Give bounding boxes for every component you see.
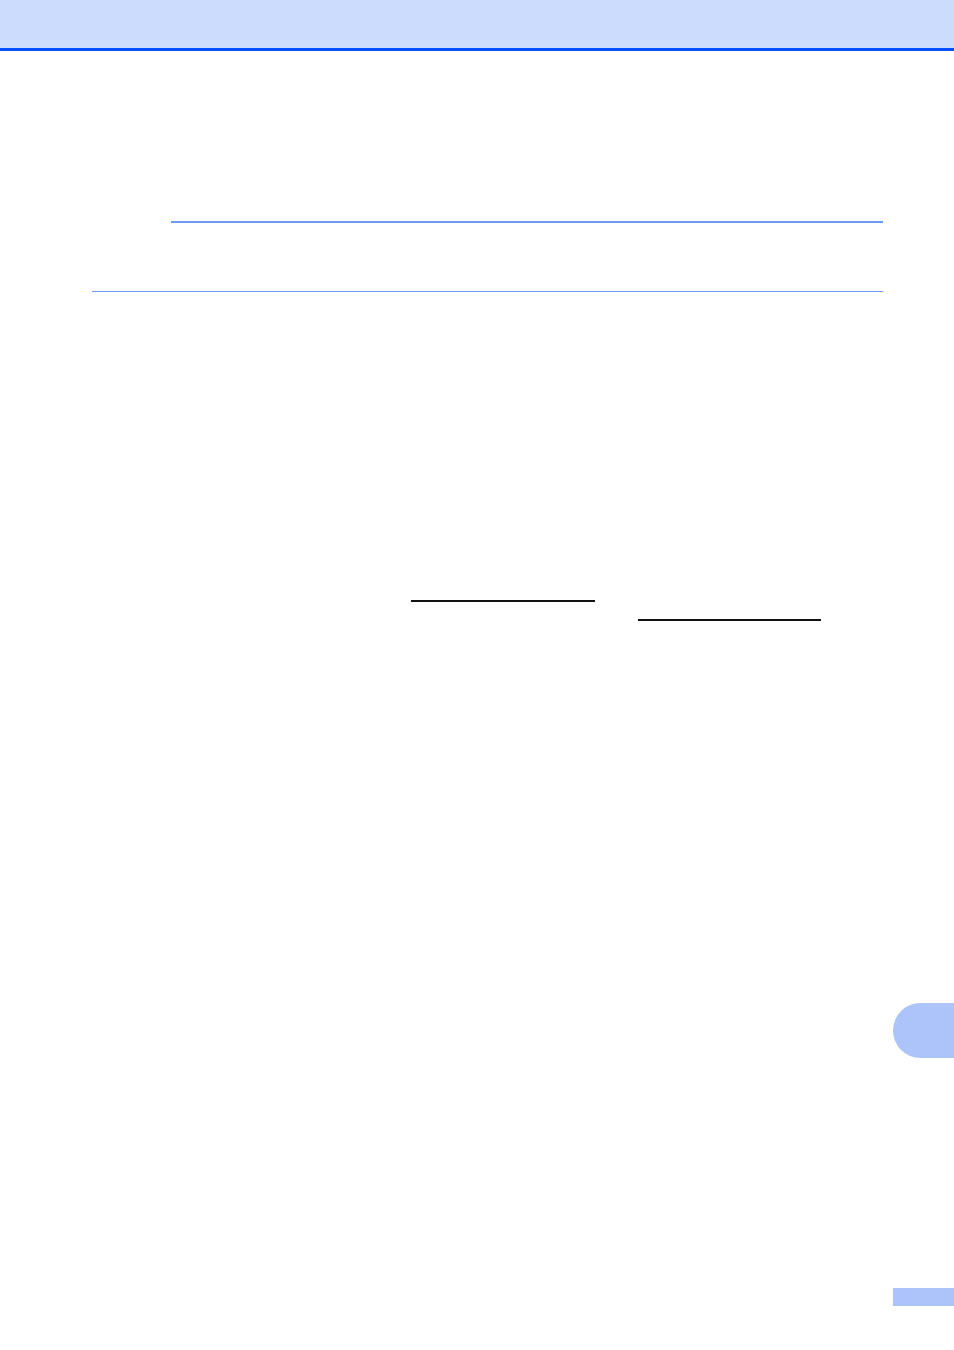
button[interactable]: Section index tab: [893, 1003, 954, 1058]
